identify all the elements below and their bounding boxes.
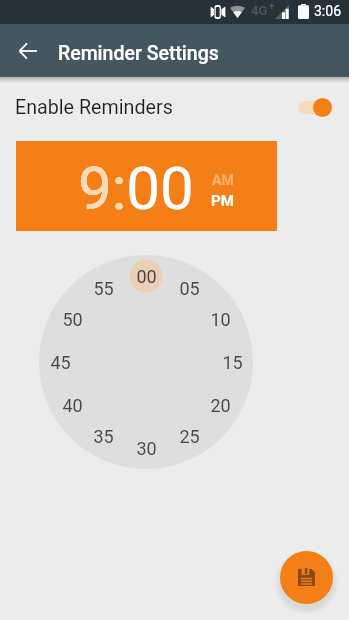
staticText: 25 xyxy=(179,426,200,447)
button[interactable]: 05 xyxy=(171,276,207,300)
staticText: Reminder Settings xyxy=(58,42,219,65)
staticText: 10 xyxy=(210,309,231,330)
button[interactable]: 00 xyxy=(128,264,164,288)
button[interactable]: 9:00 xyxy=(16,141,277,231)
staticText: + xyxy=(269,1,275,13)
staticText: 30 xyxy=(136,438,157,459)
button[interactable]: 25 xyxy=(171,424,207,448)
button[interactable]: 20 xyxy=(202,393,238,417)
staticText: Enable Reminders xyxy=(15,96,173,119)
staticText: 40 xyxy=(62,395,83,416)
button[interactable]: 50 xyxy=(54,307,90,331)
button[interactable]: 40 xyxy=(54,393,90,417)
staticText: 45 xyxy=(50,352,71,373)
button[interactable]: 45 xyxy=(42,350,78,374)
staticText: 35 xyxy=(93,426,114,447)
staticText: 9: xyxy=(78,153,127,223)
button[interactable]: Save xyxy=(280,551,333,604)
staticText: 20 xyxy=(210,395,231,416)
button[interactable]: 35 xyxy=(85,424,121,448)
button[interactable]: PM xyxy=(211,192,234,210)
staticText: 4G xyxy=(251,3,268,18)
button[interactable]: Enable Reminders xyxy=(0,83,349,131)
staticText: 9:00 xyxy=(78,153,194,223)
staticText: 3:06 xyxy=(314,3,341,19)
staticText: 00 xyxy=(136,266,157,287)
button[interactable]: 15 xyxy=(214,350,250,374)
button[interactable]: 10 xyxy=(202,307,238,331)
button[interactable]: 30 xyxy=(128,436,164,460)
staticText: 15 xyxy=(222,352,243,373)
button[interactable]: 55 xyxy=(85,276,121,300)
button[interactable]: Back xyxy=(0,24,55,77)
staticText: 05 xyxy=(179,278,200,299)
button[interactable]: AM xyxy=(212,172,234,188)
staticText: 55 xyxy=(93,278,114,299)
staticText: 50 xyxy=(62,309,83,330)
